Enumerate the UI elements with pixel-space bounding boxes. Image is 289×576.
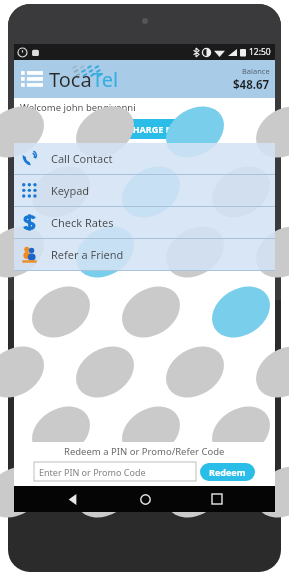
staticText: Call Contact: [51, 151, 113, 166]
staticText: Tel: [92, 66, 119, 93]
button[interactable]: Refer a Friend: [14, 239, 275, 270]
staticText: 12:50: [249, 46, 271, 58]
button[interactable]: Home: [130, 486, 160, 512]
staticText: Redeem: [209, 466, 246, 478]
staticText: Toca: [49, 66, 92, 93]
staticText: Redeem a PIN or Promo/Refer Code: [64, 445, 225, 458]
staticText: Check Rates: [51, 215, 114, 230]
button[interactable]: Call Contact: [14, 143, 275, 174]
staticText: RECHARGE NOW: [116, 123, 189, 135]
button[interactable]: RECHARGE NOW: [103, 119, 202, 139]
button[interactable]: Menu: [19, 66, 45, 92]
staticText: Keypad: [51, 183, 90, 198]
button[interactable]: Back: [57, 486, 87, 512]
button[interactable]: Redeem: [200, 463, 255, 481]
button[interactable]: Recent apps: [202, 486, 232, 512]
staticText: Refer a Friend: [51, 247, 124, 262]
staticText: Welcome john bengivenni: [20, 101, 136, 114]
staticText: $48.67: [233, 77, 270, 93]
button[interactable]: Check Rates: [14, 207, 275, 238]
staticText: Balance: [242, 66, 270, 76]
button[interactable]: Keypad: [14, 175, 275, 206]
button[interactable]: Enter PIN or Promo Code: [34, 462, 196, 481]
staticText: Enter PIN or Promo Code: [39, 466, 146, 478]
